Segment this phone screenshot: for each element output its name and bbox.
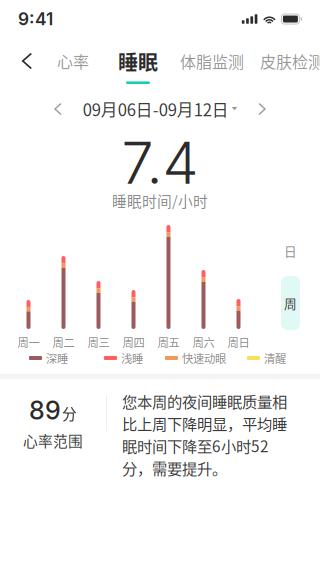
staticText: 09月06日-09月12日 [83, 97, 229, 121]
staticText: 89 [29, 395, 61, 426]
staticText: 心率范围 [23, 430, 83, 451]
staticText: 周五 [157, 334, 179, 350]
button[interactable]: 深睡 [0, 353, 68, 363]
staticText: 日 [284, 242, 297, 260]
button[interactable]: 返回 [0, 44, 42, 78]
staticText: 9:41 [18, 8, 53, 29]
staticText: 周日 [227, 334, 249, 350]
button[interactable]: 皮肤检测 [252, 44, 320, 78]
button[interactable]: 浅睡 [68, 353, 143, 363]
button[interactable]: 体脂监测 [172, 44, 252, 78]
staticText: 睡眠时间/小时 [112, 190, 208, 211]
button[interactable]: 心率 [42, 44, 104, 78]
button[interactable]: 清醒 [226, 353, 286, 363]
staticText: 周 [284, 294, 297, 312]
button[interactable]: 快速动眼 [143, 353, 226, 363]
button[interactable]: 09月06日-09月12日 [83, 96, 237, 122]
staticText: 7.4 [121, 128, 198, 198]
staticText: 深睡 [46, 350, 68, 366]
button[interactable]: 周 [281, 276, 300, 330]
staticText: 周四 [122, 334, 144, 350]
staticText: 您本周的夜间睡眠质量相比上周下降明显，平均睡眠时间下降至6小时52分，需要提升。 [122, 390, 287, 479]
button[interactable]: 日 [281, 224, 300, 260]
staticText: 周二 [52, 334, 74, 350]
staticText: 周三 [87, 334, 109, 350]
staticText: 清醒 [264, 350, 286, 366]
staticText: 浅睡 [121, 350, 143, 366]
staticText: 体脂监测 [180, 49, 244, 73]
staticText: 心率 [57, 49, 89, 73]
staticText: 皮肤检测 [260, 49, 320, 73]
button[interactable]: 下一周 [245, 96, 279, 122]
staticText: 周六 [192, 334, 214, 350]
staticText: 睡眠 [118, 47, 158, 76]
staticText: 周一 [17, 334, 39, 350]
button[interactable]: 睡眠 [104, 44, 172, 78]
button[interactable]: 上一周 [41, 96, 75, 122]
staticText: 分 [62, 402, 77, 424]
staticText: 快速动眼 [182, 350, 226, 366]
